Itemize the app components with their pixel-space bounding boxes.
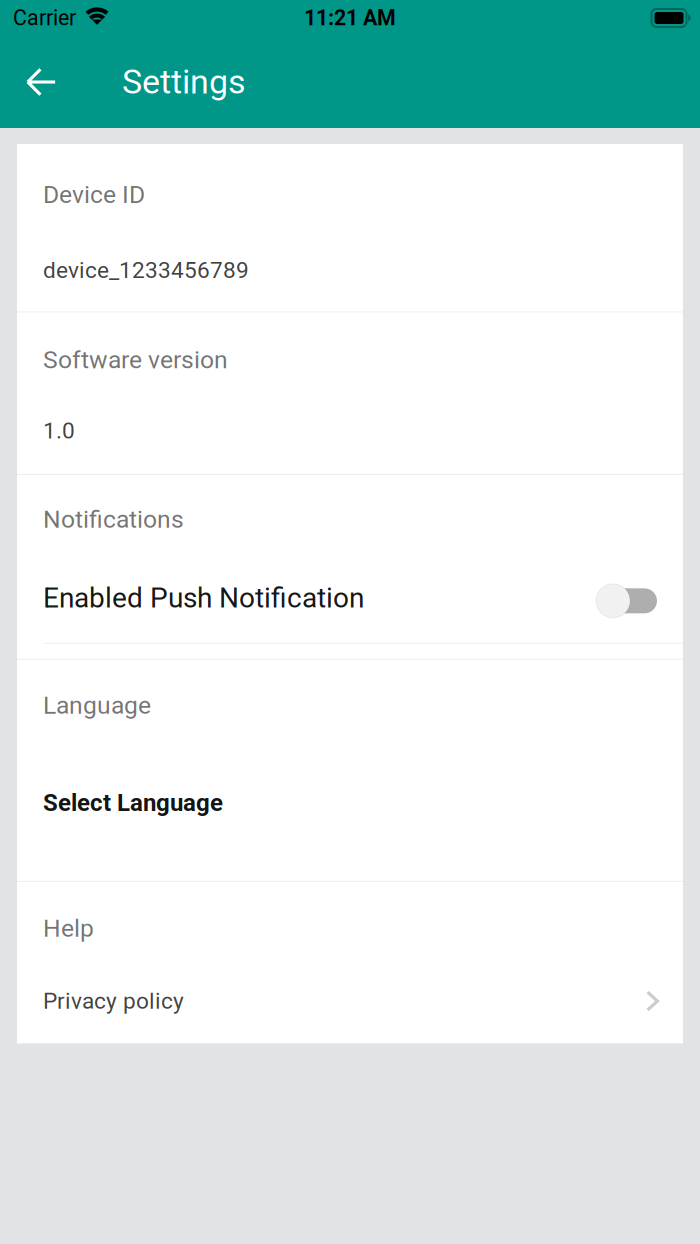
staticText: Help: [43, 914, 94, 943]
button[interactable]: Privacy policy: [17, 943, 683, 1043]
staticText: device_1233456789: [43, 257, 249, 283]
staticText: 1.0: [43, 417, 75, 444]
staticText: Device ID: [43, 180, 145, 209]
staticText: Settings: [122, 62, 246, 102]
staticText: Language: [43, 691, 151, 720]
staticText: Notifications: [43, 505, 184, 534]
staticText: Enabled Push Notification: [43, 581, 364, 614]
button[interactable]: Back: [13, 54, 69, 110]
button[interactable]: Enabled Push Notification: [17, 534, 683, 643]
staticText: 11:21 AM: [304, 5, 396, 30]
staticText: Select Language: [43, 789, 223, 817]
staticText: Privacy policy: [43, 988, 184, 1014]
staticText: Carrier: [13, 5, 76, 30]
staticText: Software version: [43, 345, 228, 374]
button[interactable]: Select Language: [17, 720, 683, 881]
